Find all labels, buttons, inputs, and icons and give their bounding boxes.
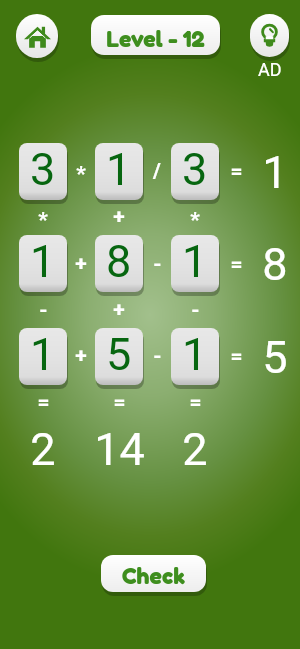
staticText: 1 xyxy=(182,328,208,378)
staticText: 1 xyxy=(262,146,288,194)
staticText: + xyxy=(75,252,87,277)
staticText: 5 xyxy=(262,331,288,379)
staticText: 3 xyxy=(182,143,208,193)
button[interactable]: 8 xyxy=(95,235,143,292)
staticText: - xyxy=(153,252,162,277)
staticText: = xyxy=(230,344,243,369)
staticText: + xyxy=(113,298,125,323)
staticText: 8 xyxy=(106,235,132,285)
button[interactable]: Hint xyxy=(250,14,289,57)
button[interactable]: Level - 12 xyxy=(91,15,220,55)
staticText: = xyxy=(113,390,126,415)
staticText: 2 xyxy=(30,423,56,471)
staticText: Check xyxy=(122,562,186,590)
staticText: / xyxy=(153,159,161,184)
button[interactable]: 3 xyxy=(171,143,219,200)
staticText: 1 xyxy=(106,143,132,193)
button[interactable]: Home xyxy=(16,14,58,58)
button[interactable]: 1 xyxy=(19,328,67,385)
staticText: 8 xyxy=(262,238,288,286)
staticText: = xyxy=(230,252,243,277)
button[interactable]: 1 xyxy=(95,143,143,200)
staticText: 3 xyxy=(30,143,56,193)
staticText: 5 xyxy=(106,328,132,378)
button[interactable]: 5 xyxy=(95,328,143,385)
staticText: AD xyxy=(258,59,282,80)
staticText: = xyxy=(189,390,202,415)
button[interactable]: 1 xyxy=(19,235,67,292)
staticText: - xyxy=(191,298,200,323)
staticText: 1 xyxy=(30,328,56,378)
staticText: * xyxy=(76,162,86,187)
staticText: - xyxy=(153,344,162,369)
staticText: + xyxy=(75,344,87,369)
staticText: 14 xyxy=(94,423,145,471)
staticText: 1 xyxy=(182,235,208,285)
staticText: = xyxy=(37,390,50,415)
button[interactable]: Check xyxy=(101,555,206,592)
staticText: - xyxy=(39,298,48,323)
button[interactable]: 1 xyxy=(171,328,219,385)
staticText: + xyxy=(113,205,125,230)
staticText: Level - 12 xyxy=(106,25,205,53)
button[interactable]: 1 xyxy=(171,235,219,292)
staticText: 2 xyxy=(182,423,208,471)
staticText: * xyxy=(190,208,200,233)
button[interactable]: 3 xyxy=(19,143,67,200)
staticText: = xyxy=(230,159,243,184)
staticText: * xyxy=(38,208,48,233)
staticText: 1 xyxy=(30,235,56,285)
